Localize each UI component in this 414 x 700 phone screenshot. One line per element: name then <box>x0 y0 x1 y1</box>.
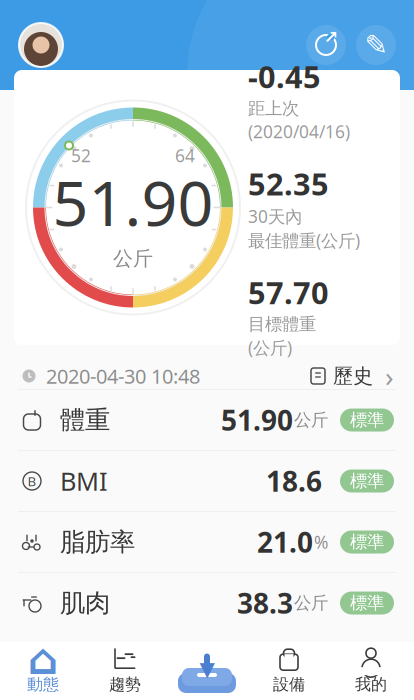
staticText: 公斤 <box>113 246 153 271</box>
staticText: ▼ <box>199 658 214 680</box>
staticText: 脂肪率 <box>60 526 135 557</box>
button[interactable]: Edit <box>356 25 396 65</box>
staticText: › <box>385 357 394 395</box>
button[interactable]: 脂肪率 <box>0 512 414 572</box>
staticText: (公斤) <box>248 336 292 359</box>
staticText: -0.45 <box>248 56 321 97</box>
staticText: 動態 <box>27 675 59 694</box>
staticText: 設備 <box>273 675 305 694</box>
staticText: (2020/04/16) <box>248 120 350 143</box>
staticText: 標準 <box>350 531 384 553</box>
staticText: 歷史 <box>333 364 373 388</box>
staticText: % <box>314 530 328 553</box>
staticText: 51.90 <box>221 401 293 439</box>
button[interactable]: Profile <box>18 22 64 68</box>
staticText: ↗ <box>323 27 338 47</box>
staticText: ✎ <box>364 29 387 61</box>
button[interactable]: Sync <box>306 25 346 65</box>
staticText: 2020-04-30 10:48 <box>46 363 200 389</box>
staticText: 標準 <box>350 470 384 492</box>
staticText: 體重 <box>60 404 110 435</box>
staticText: 趨勢 <box>109 675 141 694</box>
button[interactable]: 肌肉 <box>0 573 414 633</box>
staticText: 標準 <box>350 592 384 614</box>
staticText: 64 <box>175 144 195 167</box>
staticText: 51.90 <box>52 160 213 243</box>
button[interactable]: 趨勢 <box>84 642 166 700</box>
staticText: 公斤 <box>294 409 328 431</box>
staticText: 距上次 <box>248 98 299 119</box>
staticText: 最佳體重(公斤) <box>248 229 360 252</box>
staticText: 57.70 <box>248 272 329 313</box>
button[interactable]: 設備 <box>248 642 330 700</box>
staticText: 標準 <box>350 409 384 431</box>
staticText: 38.3 <box>237 584 293 622</box>
button[interactable]: 我的 <box>330 642 412 700</box>
staticText: 公斤 <box>294 592 328 614</box>
button[interactable]: 體重 <box>0 390 414 450</box>
staticText: 21.0 <box>257 523 313 561</box>
staticText: ⌂ <box>27 635 58 683</box>
button[interactable]: B <box>0 451 414 511</box>
button[interactable]: Measure <box>166 642 248 700</box>
button[interactable]: ⌂ <box>2 642 84 700</box>
staticText: 52 <box>71 144 91 167</box>
staticText: 目標體重 <box>248 314 316 335</box>
staticText: 52.35 <box>248 163 329 204</box>
staticText: 我的 <box>355 675 387 694</box>
staticText: 肌肉 <box>60 587 110 618</box>
staticText: 30天內 <box>248 205 302 228</box>
staticText: BMI <box>60 464 108 498</box>
staticText: 18.6 <box>266 462 322 500</box>
button[interactable]: 歷史 <box>300 349 394 403</box>
staticText: B <box>27 472 36 490</box>
